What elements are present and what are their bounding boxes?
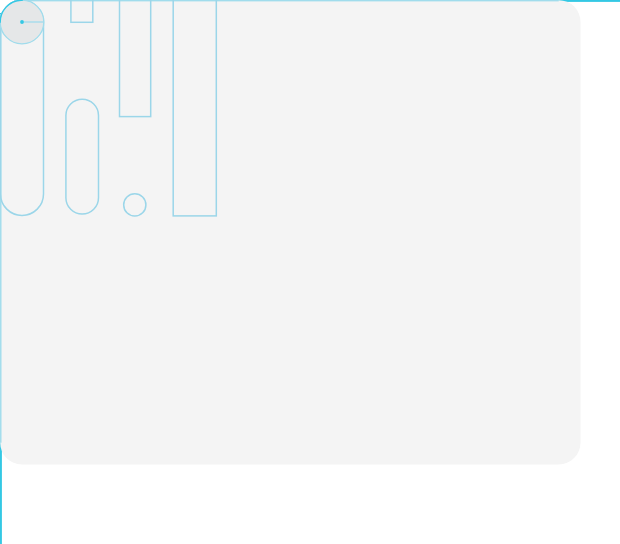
button[interactable]: Selected surface [0,0,580,464]
button[interactable]: Adjust corner radius [0,0,44,44]
